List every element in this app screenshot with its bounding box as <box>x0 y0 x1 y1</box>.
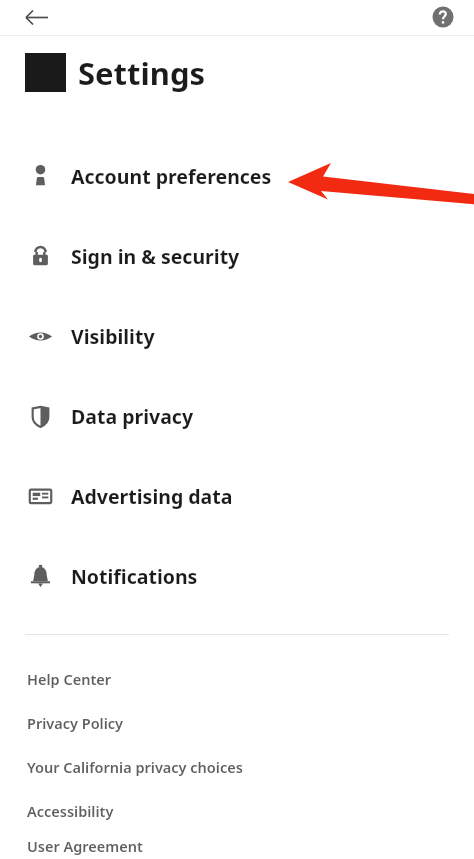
button[interactable]: Help Center <box>0 657 474 701</box>
staticText: Privacy Policy <box>27 713 124 733</box>
button[interactable]: Accessibility <box>0 789 474 833</box>
staticText: Account preferences <box>71 163 272 190</box>
button[interactable]: Back <box>17 0 57 35</box>
button[interactable]: Your California privacy choices <box>0 745 474 789</box>
staticText: Data privacy <box>71 403 194 430</box>
staticText: Help Center <box>27 669 112 689</box>
staticText: Advertising data <box>71 483 233 510</box>
button[interactable]: Notifications <box>0 536 474 616</box>
button[interactable]: Privacy Policy <box>0 701 474 745</box>
staticText: Sign in & security <box>71 243 240 270</box>
button[interactable]: Advertising data <box>0 456 474 536</box>
button[interactable]: User Agreement <box>0 833 474 859</box>
button[interactable]: Data privacy <box>0 376 474 456</box>
staticText: User Agreement <box>27 836 143 856</box>
button[interactable]: Help <box>427 1 459 33</box>
staticText: Visibility <box>71 323 155 350</box>
button[interactable]: Visibility <box>0 296 474 376</box>
staticText: Settings <box>78 52 206 94</box>
staticText: Accessibility <box>27 801 114 821</box>
staticText: Your California privacy choices <box>27 757 243 777</box>
button[interactable]: Sign in & security <box>0 216 474 296</box>
staticText: Notifications <box>71 563 198 590</box>
button[interactable]: Account preferences <box>0 136 474 216</box>
